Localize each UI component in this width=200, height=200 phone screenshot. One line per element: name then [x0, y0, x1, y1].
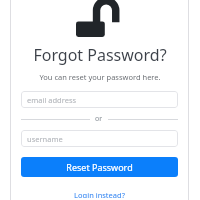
- button[interactable]: Login instead?: [71, 188, 128, 200]
- staticText: email address: [27, 95, 77, 105]
- staticText: Reset Password: [66, 161, 133, 173]
- staticText: Login instead?: [74, 190, 125, 198]
- other: Unlocked padlock: [76, 0, 124, 37]
- button[interactable]: Reset Password: [21, 157, 178, 177]
- button[interactable]: email address: [21, 91, 178, 108]
- staticText: username: [27, 134, 63, 144]
- staticText: Forgot Password?: [33, 44, 167, 66]
- staticText: You can reset your password here.: [39, 72, 161, 82]
- staticText: or: [95, 114, 103, 124]
- button[interactable]: username: [21, 130, 178, 147]
